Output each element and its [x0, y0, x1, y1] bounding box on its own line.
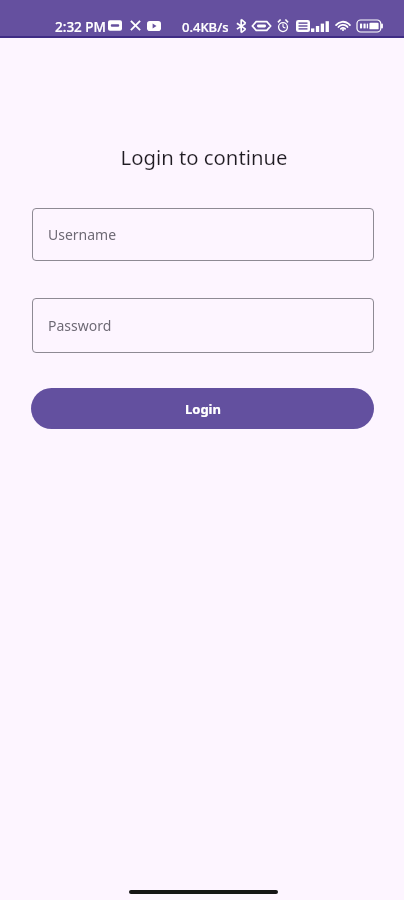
other: Messages — [108, 19, 122, 32]
other: Bluetooth — [236, 19, 247, 33]
button[interactable]: Login — [31, 388, 374, 429]
staticText: 0.4KB/s — [182, 18, 229, 36]
other: Alarm set — [277, 19, 289, 33]
button[interactable]: Password — [32, 298, 374, 353]
other: Mobile signal — [311, 20, 329, 32]
other: Battery — [357, 20, 384, 32]
staticText: Password — [48, 316, 112, 335]
staticText: Login — [185, 400, 221, 418]
button[interactable]: Username — [32, 208, 374, 261]
other: VPN — [252, 20, 271, 32]
other: YouTube — [147, 21, 161, 31]
other: Wi-Fi — [334, 20, 352, 32]
other: SIM card — [296, 20, 310, 32]
staticText: Username — [48, 225, 117, 244]
staticText: Login to continue — [2, 143, 404, 171]
other: X — [130, 20, 141, 31]
staticText: 2:32 PM — [55, 18, 106, 36]
